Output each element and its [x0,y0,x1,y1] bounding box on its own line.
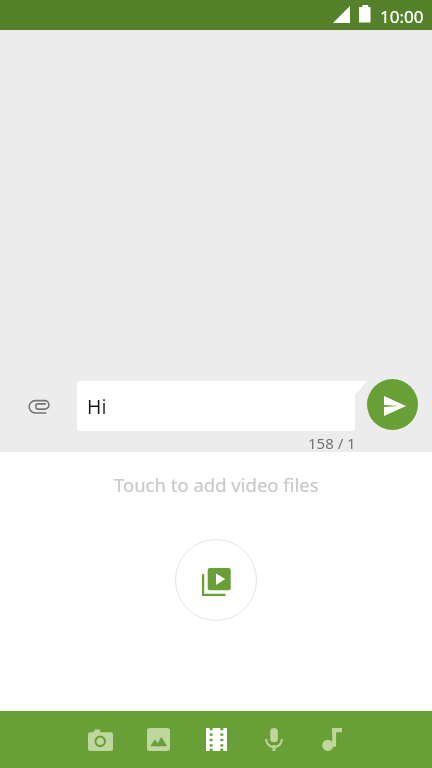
button[interactable]: Send [367,379,418,430]
button[interactable]: Video [187,711,245,768]
button[interactable]: Add video files [175,539,257,621]
staticText: Touch to add video files [114,472,319,497]
staticText: 10:00 [380,5,424,28]
button[interactable]: Music [303,711,361,768]
staticText: Hi [87,393,107,420]
button[interactable]: Gallery [129,711,187,768]
staticText: 158 / 1 [308,433,356,453]
button[interactable]: Audio [245,711,303,768]
button[interactable]: Attach file [18,388,58,428]
button[interactable]: Camera [71,711,129,768]
button[interactable]: Hi [77,381,367,431]
